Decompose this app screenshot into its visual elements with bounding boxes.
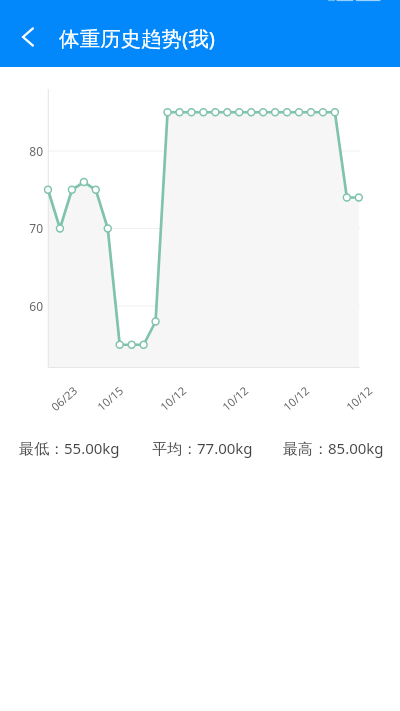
staticText: 70	[23, 220, 43, 236]
staticText: 10/12	[337, 378, 380, 419]
staticText: 最低：55.00kg	[19, 438, 120, 458]
staticText: 最高：85.00kg	[283, 438, 384, 458]
staticText: 10/12	[213, 378, 256, 419]
staticText: 平均：77.00kg	[152, 438, 253, 458]
staticText: 10/12	[274, 378, 317, 419]
staticText: 体重历史趋势(我)	[59, 24, 215, 52]
staticText: 10/15	[88, 378, 131, 419]
staticText: 60	[23, 298, 43, 314]
staticText: 06/23	[42, 378, 85, 419]
staticText: 10/12	[151, 378, 194, 419]
button[interactable]: Back	[8, 18, 45, 55]
staticText: 80	[23, 143, 43, 159]
